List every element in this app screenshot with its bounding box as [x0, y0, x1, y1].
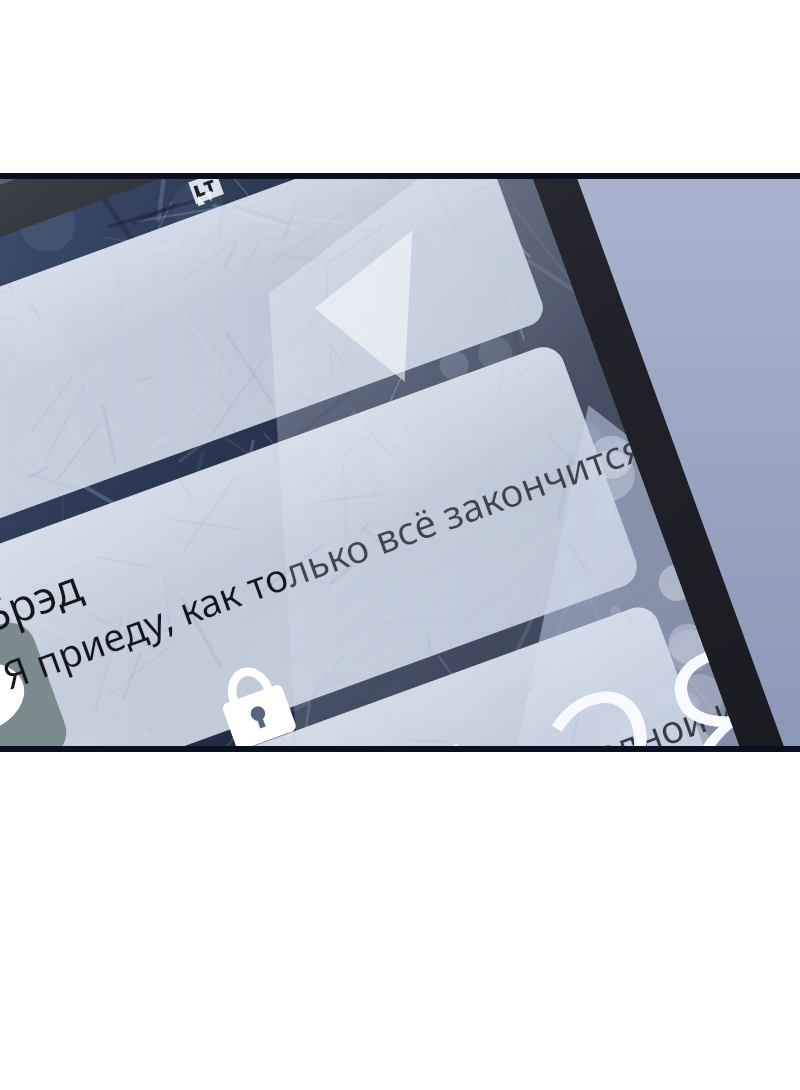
- button[interactable]: Lock screen notifications from Брэд: [0, 0, 800, 1090]
